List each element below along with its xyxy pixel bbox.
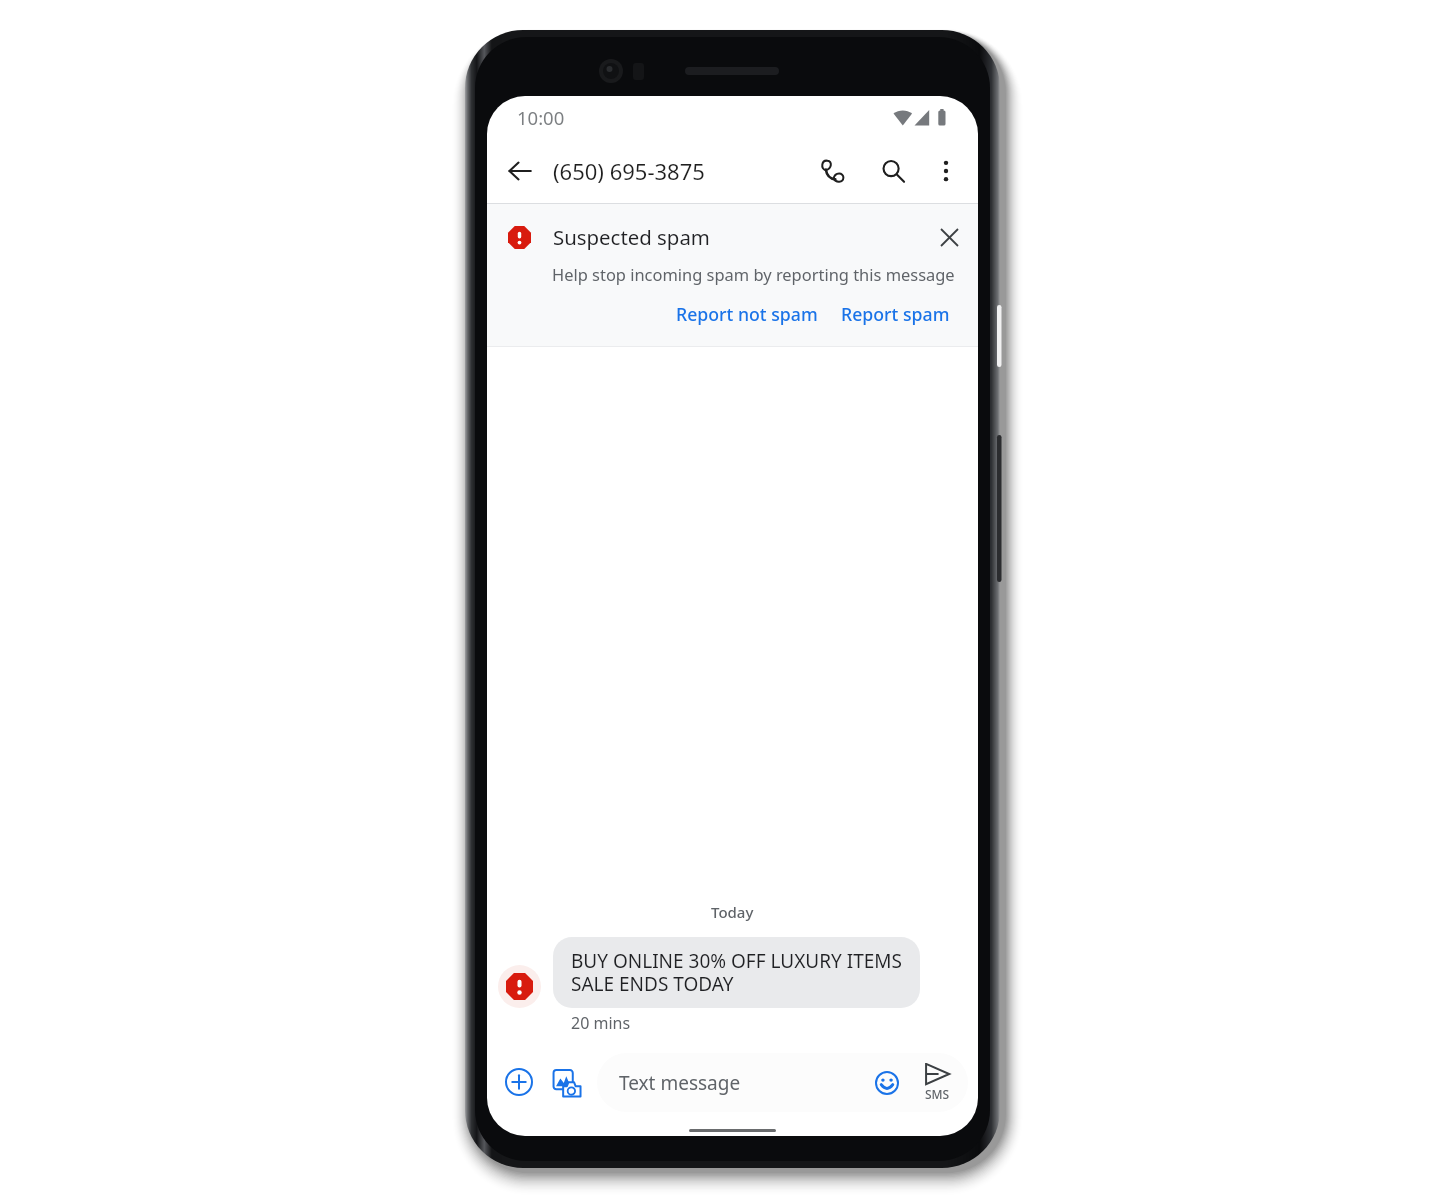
button[interactable]: Back: [499, 150, 541, 192]
staticText: Report not spam: [676, 302, 818, 326]
button[interactable]: Text message: [597, 1053, 968, 1112]
staticText: BUY ONLINE 30% OFF LUXURY ITEMS SALE END…: [571, 948, 902, 997]
staticText: Today: [711, 902, 754, 922]
staticText: Text message: [619, 1070, 741, 1096]
button[interactable]: Emoji: [870, 1066, 904, 1100]
staticText: 20 mins: [571, 1012, 631, 1034]
staticText: Report spam: [841, 302, 950, 326]
button[interactable]: BUY ONLINE 30% OFF LUXURY ITEMS SALE END…: [553, 937, 920, 1008]
button[interactable]: Call: [811, 150, 853, 192]
button[interactable]: Search: [872, 150, 914, 192]
button[interactable]: Add attachment: [497, 1060, 541, 1104]
staticText: SMS: [925, 1086, 950, 1102]
staticText: Suspected spam: [553, 223, 710, 251]
button[interactable]: Camera and gallery: [545, 1060, 589, 1104]
button[interactable]: Send SMS: [915, 1063, 959, 1102]
staticText: Help stop incoming spam by reporting thi…: [552, 263, 955, 285]
button[interactable]: More options: [925, 150, 967, 192]
staticText: 10:00: [517, 105, 565, 130]
button[interactable]: Report spam: [835, 299, 956, 329]
staticText: (650) 695-3875: [553, 156, 705, 186]
button[interactable]: Dismiss: [932, 220, 966, 254]
button[interactable]: Report not spam: [670, 299, 824, 329]
